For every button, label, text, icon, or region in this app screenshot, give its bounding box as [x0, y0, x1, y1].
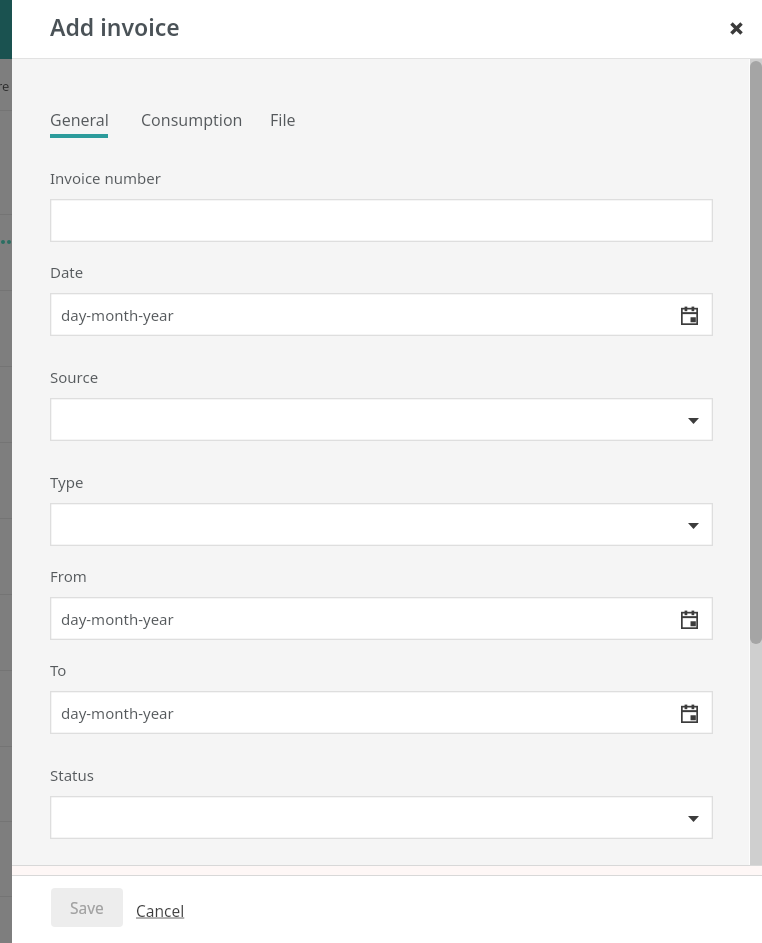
staticText: day-month-year — [61, 305, 174, 325]
staticText: day-month-year — [61, 703, 174, 723]
button[interactable]: day-month-year — [50, 597, 713, 640]
staticText: From — [50, 566, 87, 586]
staticText: Cancel — [136, 900, 185, 921]
button[interactable]: Save — [51, 888, 123, 927]
button[interactable]: Close — [718, 10, 754, 46]
staticText: day-month-year — [61, 609, 174, 629]
button[interactable]: Cancel — [136, 900, 185, 921]
staticText: Date — [50, 262, 84, 282]
staticText: General — [50, 109, 108, 131]
button[interactable]: General — [50, 109, 108, 140]
button[interactable] — [50, 398, 713, 441]
staticText: File — [270, 109, 295, 131]
button[interactable] — [50, 199, 713, 242]
staticText: Status — [50, 765, 94, 785]
other: Pick date — [681, 610, 698, 629]
button[interactable] — [50, 503, 713, 546]
staticText: Consumption — [141, 109, 237, 131]
other: Pick date — [681, 704, 698, 723]
staticText: Invoice number — [50, 168, 161, 188]
button[interactable]: day-month-year — [50, 293, 713, 336]
button[interactable]: File — [270, 109, 295, 140]
staticText: re — [0, 77, 9, 95]
staticText: Add invoice — [50, 11, 180, 42]
button[interactable] — [50, 796, 713, 839]
other: Pick date — [681, 306, 698, 325]
staticText: To — [50, 660, 67, 680]
button[interactable]: day-month-year — [50, 691, 713, 734]
staticText: Save — [70, 897, 104, 918]
staticText: Source — [50, 367, 99, 387]
staticText: Type — [50, 472, 84, 492]
button[interactable]: Consumption — [141, 109, 237, 140]
